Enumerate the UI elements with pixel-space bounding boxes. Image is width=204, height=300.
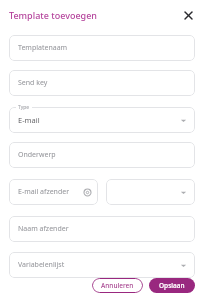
staticText: E-mail afzender [18, 187, 70, 197]
staticText: Onderwerp [18, 150, 56, 160]
button[interactable]: Naam afzender [9, 216, 195, 242]
button[interactable]: Onderwerp [9, 142, 195, 168]
button[interactable]: Send key [9, 70, 195, 96]
button[interactable]: Variabelenlijst [9, 252, 195, 278]
button[interactable]: E-mail afzender [9, 179, 98, 205]
staticText: Templatenaam [18, 43, 68, 53]
staticText: Template toevoegen [9, 9, 181, 21]
staticText: Send key [18, 78, 48, 88]
button[interactable]: Templatenaam [9, 35, 195, 61]
staticText: Opslaan [159, 281, 185, 290]
button[interactable]: Opslaan [149, 278, 195, 293]
staticText: Annuleren [101, 281, 134, 290]
button[interactable]: Annuleren [92, 278, 143, 293]
staticText: E-mail [18, 115, 40, 125]
staticText: Variabelenlijst [18, 260, 65, 270]
button[interactable]: E-mail [9, 107, 195, 133]
staticText: Type [18, 104, 30, 111]
staticText: Naam afzender [18, 224, 69, 234]
button[interactable]: Kies domein [106, 179, 195, 205]
button[interactable]: Sluiten [181, 8, 195, 22]
